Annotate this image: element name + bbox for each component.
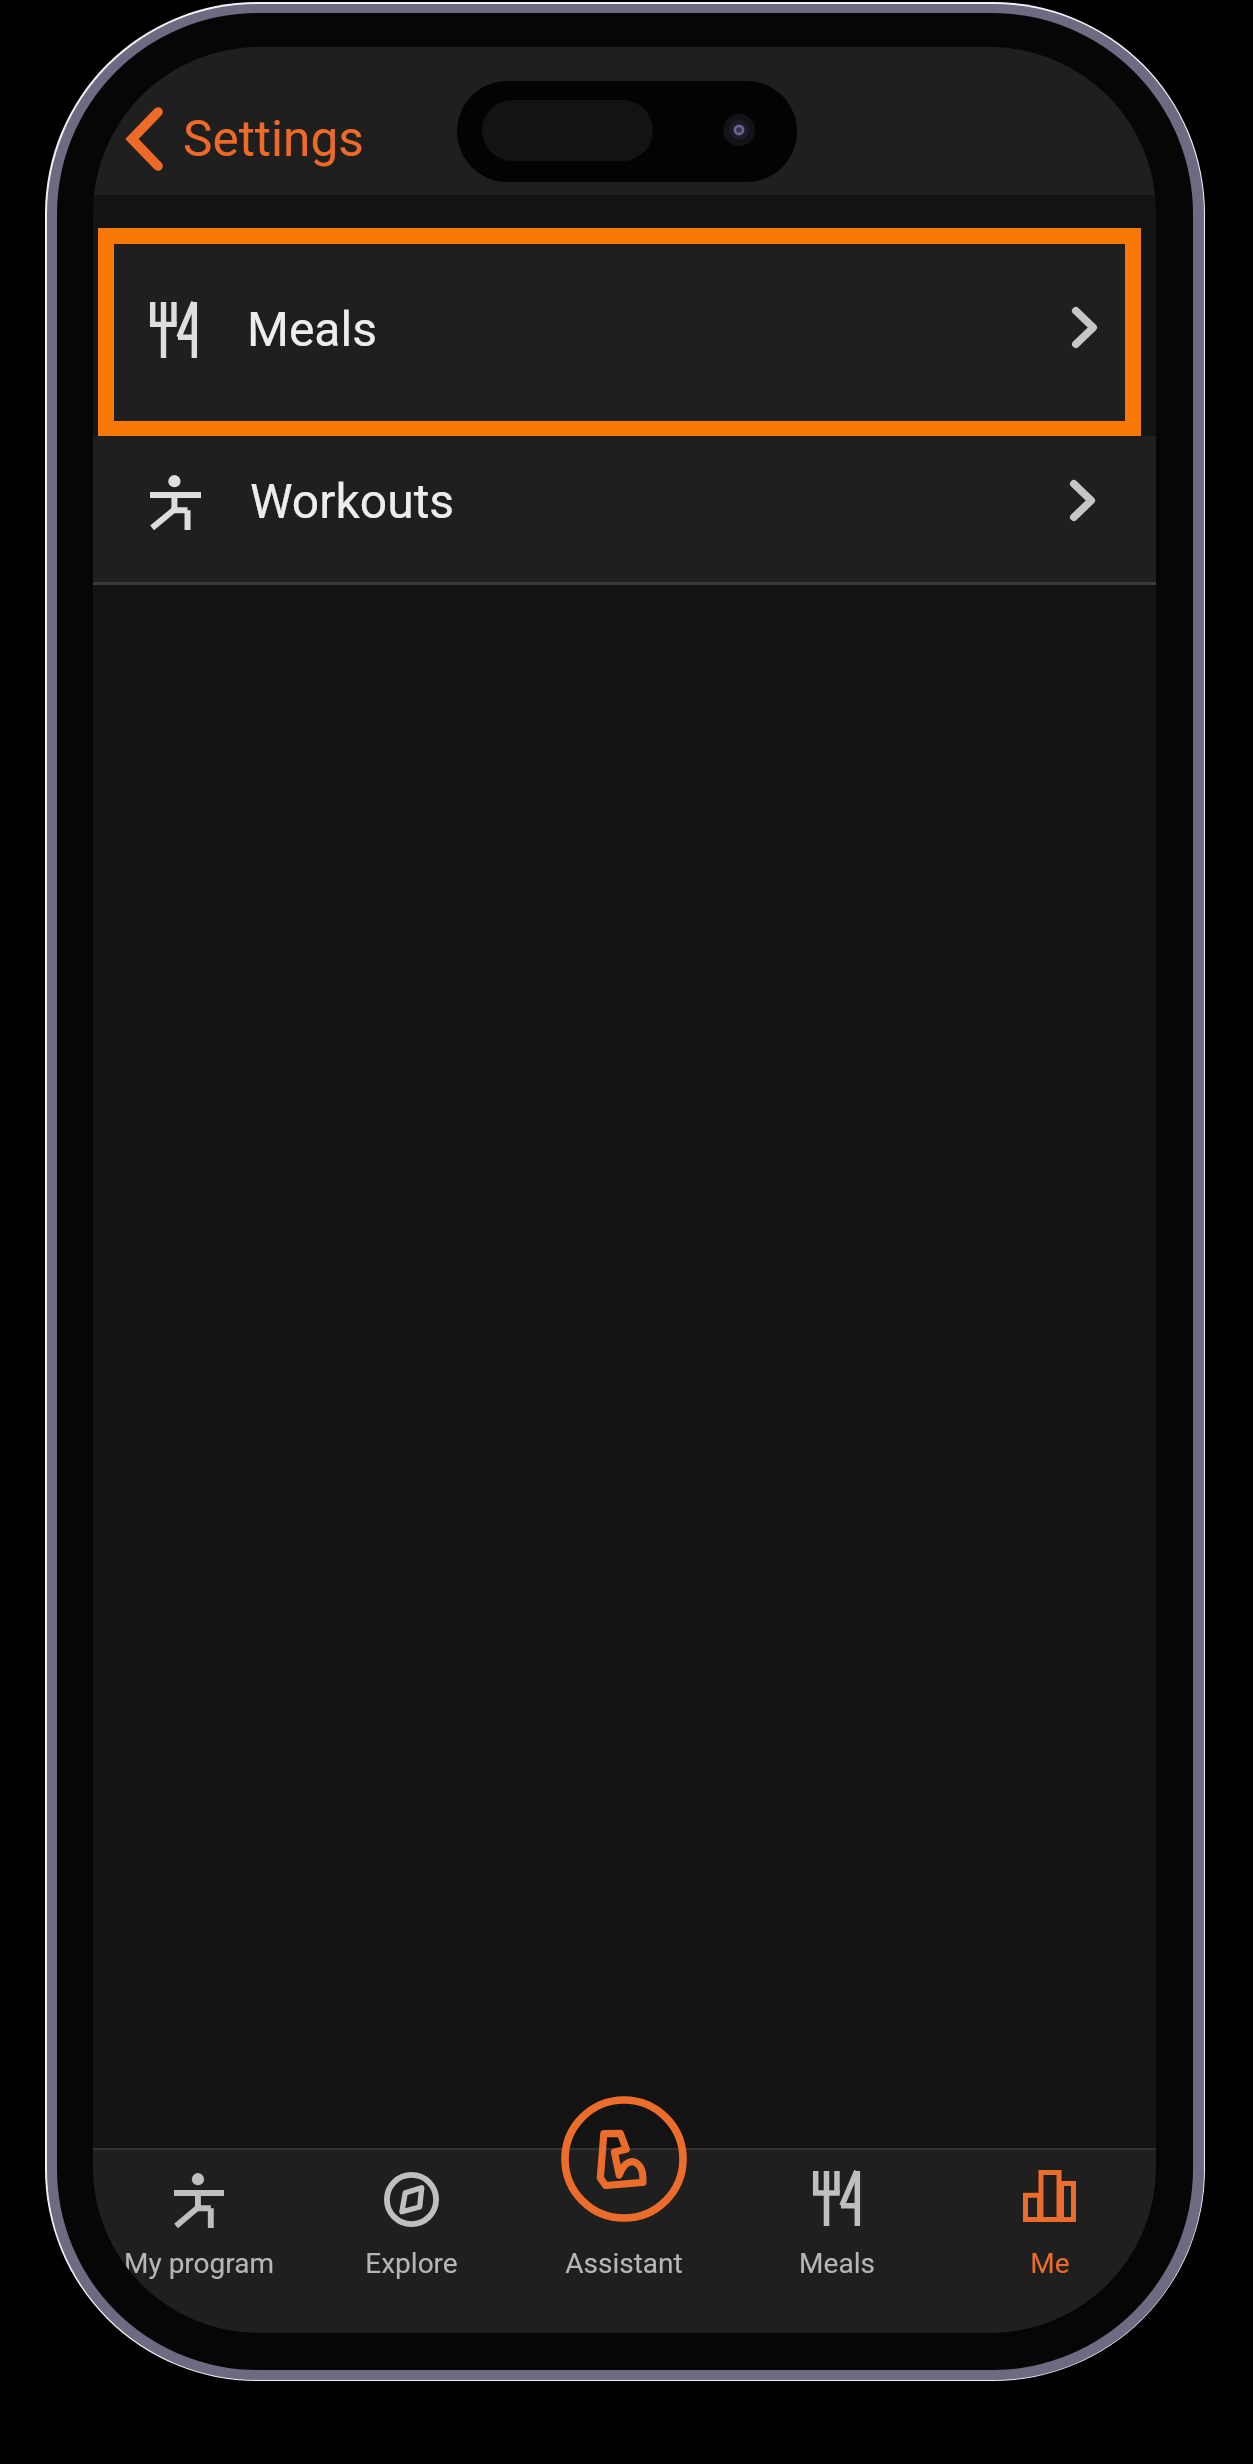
- button[interactable]: Me: [943, 2148, 1156, 2333]
- staticText: Meals: [247, 301, 377, 357]
- staticText: Me: [1030, 2247, 1070, 2280]
- button[interactable]: Back to Settings: [116, 92, 380, 186]
- staticText: Settings: [183, 110, 364, 168]
- staticText: My program: [124, 2247, 274, 2280]
- staticText: Explore: [365, 2247, 458, 2280]
- button[interactable]: Meals: [730, 2148, 943, 2333]
- button[interactable]: Assistant: [517, 2148, 730, 2333]
- button[interactable]: Workouts: [93, 436, 1156, 582]
- staticText: Workouts: [250, 473, 455, 529]
- staticText: Assistant: [565, 2247, 683, 2280]
- button[interactable]: Meals: [98, 228, 1141, 437]
- staticText: Meals: [799, 2247, 875, 2280]
- button[interactable]: Explore: [305, 2148, 517, 2333]
- button[interactable]: My program: [93, 2148, 305, 2333]
